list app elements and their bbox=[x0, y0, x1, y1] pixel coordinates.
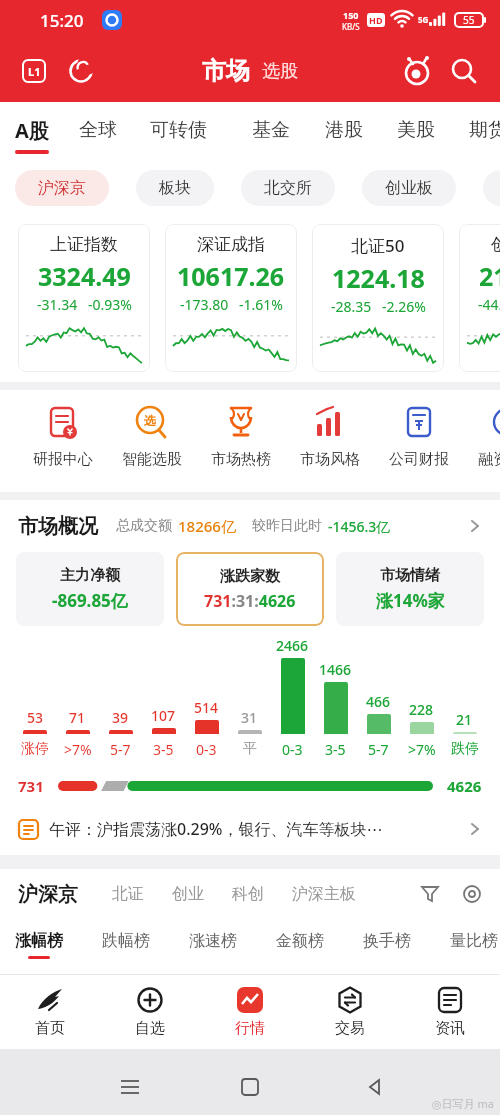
button[interactable]: 行情 bbox=[200, 975, 300, 1038]
staticText: -869.85亿 bbox=[52, 589, 128, 612]
staticText: 期货 bbox=[469, 118, 500, 142]
staticText: 31 bbox=[241, 708, 258, 727]
button[interactable]: 涨速榜 bbox=[189, 923, 237, 959]
staticText: 71 bbox=[69, 708, 86, 727]
staticText: -173.80 bbox=[180, 295, 229, 314]
staticText: 涨跌家数 bbox=[220, 567, 280, 586]
staticText: 北交所 bbox=[264, 178, 312, 198]
button[interactable]: 市场热榜 bbox=[196, 404, 285, 469]
staticText: -44.48 bbox=[478, 295, 500, 314]
staticText: 全球 bbox=[79, 118, 117, 142]
staticText: 总成交额 bbox=[116, 517, 172, 535]
button[interactable]: 量比榜 bbox=[450, 923, 498, 959]
button[interactable]: 交易 bbox=[300, 975, 400, 1038]
staticText: 39 bbox=[112, 708, 129, 727]
staticText: 美股 bbox=[397, 118, 435, 142]
button[interactable]: 自选 bbox=[100, 975, 200, 1038]
button[interactable]: 科创 bbox=[232, 884, 264, 904]
staticText: 3324.49 bbox=[38, 259, 131, 293]
staticText: -0.93% bbox=[88, 295, 132, 314]
staticText: -28.35 bbox=[331, 297, 372, 316]
button[interactable]: 午评：沪指震荡涨0.29%，银行、汽车等板块⋯ bbox=[0, 803, 500, 855]
staticText: 5-7 bbox=[110, 740, 131, 759]
staticText: 21 bbox=[456, 710, 473, 729]
button[interactable]: 换手榜 bbox=[363, 923, 411, 959]
staticText: 731 bbox=[18, 776, 44, 796]
button[interactable]: 资讯 bbox=[400, 975, 500, 1038]
staticText: 平 bbox=[243, 740, 257, 758]
staticText: 5-7 bbox=[368, 740, 389, 759]
button[interactable]: 沪深京 bbox=[15, 170, 109, 206]
button[interactable]: L1 bbox=[22, 59, 46, 83]
staticText: 资讯 bbox=[435, 1019, 465, 1038]
staticText: 市场热榜 bbox=[211, 450, 271, 469]
staticText: 15:20 bbox=[40, 9, 84, 32]
staticText: 0-3 bbox=[282, 740, 303, 759]
staticText: 行情 bbox=[235, 1019, 265, 1038]
staticText: -31.34 bbox=[37, 295, 78, 314]
staticText: 沪深京 bbox=[38, 178, 86, 198]
staticText: 涨速榜 bbox=[189, 931, 237, 951]
button[interactable]: 深证成指 bbox=[165, 224, 297, 372]
staticText: 自选 bbox=[135, 1019, 165, 1038]
button[interactable]: A股 bbox=[15, 107, 49, 154]
staticText: 市场概况 bbox=[18, 514, 98, 539]
staticText: 107 bbox=[151, 706, 176, 725]
button[interactable]: 公司财报 bbox=[374, 404, 463, 469]
staticText: 深证成指 bbox=[197, 234, 265, 255]
staticText: 板块 bbox=[159, 178, 191, 198]
staticText: 2466 bbox=[276, 636, 309, 655]
button[interactable]: 涨跌家数 bbox=[176, 552, 324, 626]
staticText: 跌停 bbox=[451, 740, 479, 758]
button[interactable]: 融资融券 bbox=[463, 404, 500, 469]
button[interactable]: 金额榜 bbox=[276, 923, 324, 959]
button[interactable]: 跌幅榜 bbox=[102, 923, 150, 959]
button[interactable]: 创业 bbox=[172, 884, 204, 904]
button[interactable]: 上证指数 bbox=[18, 224, 150, 372]
button[interactable]: 首页 bbox=[0, 975, 100, 1038]
staticText: 换手榜 bbox=[363, 931, 411, 951]
button[interactable]: 市场概况 bbox=[0, 500, 500, 552]
button[interactable]: 市场风格 bbox=[285, 404, 374, 469]
button[interactable]: 全球 bbox=[79, 108, 117, 152]
button[interactable] bbox=[68, 58, 94, 84]
button[interactable]: 北证50 bbox=[312, 224, 444, 372]
button[interactable]: 港股 bbox=[325, 108, 363, 152]
staticText: 3-5 bbox=[153, 740, 174, 759]
button[interactable]: 选 bbox=[107, 404, 196, 469]
button[interactable] bbox=[402, 56, 432, 86]
button[interactable] bbox=[462, 884, 482, 904]
staticText: 创业板指 bbox=[491, 234, 500, 255]
staticText: -2.26% bbox=[382, 297, 426, 316]
button[interactable]: 选股 bbox=[262, 60, 298, 83]
button[interactable]: 主力净额 bbox=[16, 552, 164, 626]
staticText: 市场情绪 bbox=[380, 566, 440, 585]
button[interactable]: 创业板 bbox=[362, 170, 456, 206]
button[interactable]: 北交所 bbox=[241, 170, 335, 206]
staticText: 53 bbox=[27, 708, 44, 727]
staticText: 1466 bbox=[319, 660, 352, 679]
button[interactable]: 涨幅榜 bbox=[15, 923, 63, 959]
button[interactable]: 北证 bbox=[112, 884, 144, 904]
staticText: 金额榜 bbox=[276, 931, 324, 951]
staticText: KB/S bbox=[342, 21, 360, 32]
staticText: 0-3 bbox=[196, 740, 217, 759]
staticText: 融资融券 bbox=[478, 450, 500, 469]
staticText: 沪深京 bbox=[18, 882, 78, 907]
button[interactable]: 基金 bbox=[252, 108, 290, 152]
button[interactable]: 市场情绪 bbox=[336, 552, 484, 626]
staticText: 466 bbox=[366, 692, 391, 711]
button[interactable]: 沪深主板 bbox=[292, 884, 356, 904]
button[interactable]: 研报中心 bbox=[18, 404, 107, 469]
button[interactable]: 期货 bbox=[469, 108, 500, 152]
button[interactable]: 可转债 bbox=[150, 108, 207, 152]
button[interactable] bbox=[420, 884, 440, 904]
button[interactable]: 板块 bbox=[136, 170, 214, 206]
button[interactable] bbox=[450, 57, 478, 85]
button[interactable]: 美股 bbox=[397, 108, 435, 152]
staticText: 55 bbox=[463, 13, 475, 27]
button[interactable]: 科创 bbox=[483, 170, 500, 206]
staticText: 150 bbox=[343, 9, 359, 21]
button[interactable]: 创业板指 bbox=[459, 224, 500, 372]
staticText: 18266亿 bbox=[178, 516, 236, 536]
